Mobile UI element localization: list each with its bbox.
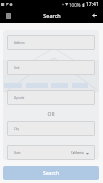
staticText: Zipcode [14,96,25,100]
staticText: Search [43,12,61,19]
staticText: Search [43,170,60,177]
button[interactable]: Menu [0,9,17,23]
button[interactable]: Search [3,166,99,180]
staticText: City [14,127,19,131]
button[interactable]: Zipcode [7,90,95,105]
button[interactable]: State [7,145,95,160]
staticText: Unit [14,66,20,70]
staticText: State [14,151,21,155]
button[interactable]: Back [85,9,103,23]
button[interactable]: Address [7,35,95,50]
staticText: 100% [69,2,81,8]
staticText: California [71,151,84,155]
button[interactable]: Unit [7,60,95,75]
button[interactable]: City [7,121,95,136]
staticText: Address [14,41,25,45]
staticText: OR [3,111,99,118]
staticText: 17:41 [86,1,99,8]
